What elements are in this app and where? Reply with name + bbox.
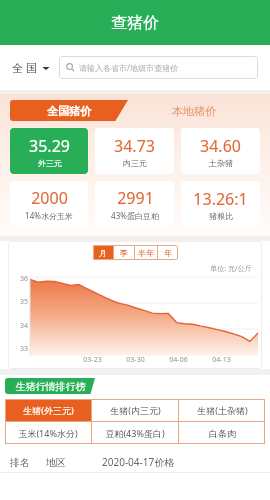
staticText: 玉米(14%水分)	[18, 427, 78, 439]
staticText: 查猪价	[111, 13, 159, 33]
staticText: 2000	[31, 187, 68, 209]
staticText: 03-23	[71, 355, 114, 365]
staticText: 地区	[46, 456, 102, 469]
staticText: 2020-04-17价格	[102, 455, 260, 469]
staticText: 内三元	[123, 158, 147, 168]
staticText: 34.73	[114, 135, 155, 157]
staticText: 全国猪价	[24, 104, 114, 118]
staticText: 全 国	[12, 60, 37, 75]
button[interactable]: 本地猪价	[128, 100, 260, 121]
staticText: 年	[164, 248, 172, 258]
button[interactable]: 2991	[95, 181, 174, 227]
staticText: 排名	[10, 456, 46, 469]
staticText: 生猪(外三元)	[23, 404, 74, 416]
staticText: 35.29	[29, 135, 70, 157]
staticText: 单位: 元/公斤	[210, 264, 252, 274]
button[interactable]: 13.26:1	[181, 181, 260, 227]
staticText: 生猪行情排行榜	[9, 380, 92, 393]
staticText: 请输入各省市/地级市查猪价	[79, 62, 178, 73]
staticText: 外三元	[38, 158, 62, 168]
button[interactable]: 35.29	[10, 128, 88, 174]
staticText: 生猪(内三元)	[110, 404, 161, 416]
button[interactable]: 生猪行情排行榜	[5, 378, 95, 394]
staticText: 豆粕(43%蛋白)	[105, 427, 165, 439]
button[interactable]: 豆粕(43%蛋白)	[92, 422, 178, 444]
staticText: 13.26:1	[193, 188, 248, 210]
button[interactable]: 2000	[10, 181, 88, 227]
staticText: 33	[19, 344, 28, 354]
staticText: 43%蛋白豆粕	[111, 210, 159, 221]
staticText: 土杂猪	[209, 158, 233, 168]
button[interactable]: 白条肉	[179, 422, 265, 444]
staticText: 14%水分玉米	[25, 210, 73, 221]
button[interactable]: 月	[93, 245, 113, 260]
staticText: 半年	[138, 248, 154, 258]
button[interactable]: 季	[114, 245, 134, 260]
staticText: 生猪(土杂猪)	[197, 404, 248, 416]
button[interactable]: 全国猪价	[10, 100, 128, 121]
button[interactable]: 全 国	[12, 60, 59, 75]
staticText: 本地猪价	[172, 104, 216, 118]
button[interactable]: 半年	[135, 245, 157, 260]
button[interactable]: 34.73	[95, 128, 174, 174]
staticText: 36	[19, 274, 28, 284]
staticText: 月	[99, 248, 107, 258]
staticText: 04-06	[157, 355, 200, 365]
staticText: 白条肉	[209, 428, 236, 439]
staticText: 35	[19, 297, 28, 307]
button[interactable]: 34.60	[181, 128, 260, 174]
button[interactable]: 年	[158, 245, 178, 260]
staticText: 34	[19, 321, 28, 331]
button[interactable]: 生猪(外三元)	[5, 399, 91, 421]
button[interactable]: 请输入各省市/地级市查猪价	[59, 56, 258, 79]
staticText: 2991	[117, 187, 154, 209]
button[interactable]: 生猪(土杂猪)	[179, 399, 265, 421]
staticText: 猪粮比	[209, 211, 233, 221]
staticText: 34.60	[200, 135, 241, 157]
staticText: 03-30	[114, 355, 157, 365]
staticText: 04-13	[200, 355, 243, 365]
staticText: 季	[120, 248, 128, 258]
button[interactable]: 玉米(14%水分)	[5, 422, 91, 444]
button[interactable]: 生猪(内三元)	[92, 399, 178, 421]
